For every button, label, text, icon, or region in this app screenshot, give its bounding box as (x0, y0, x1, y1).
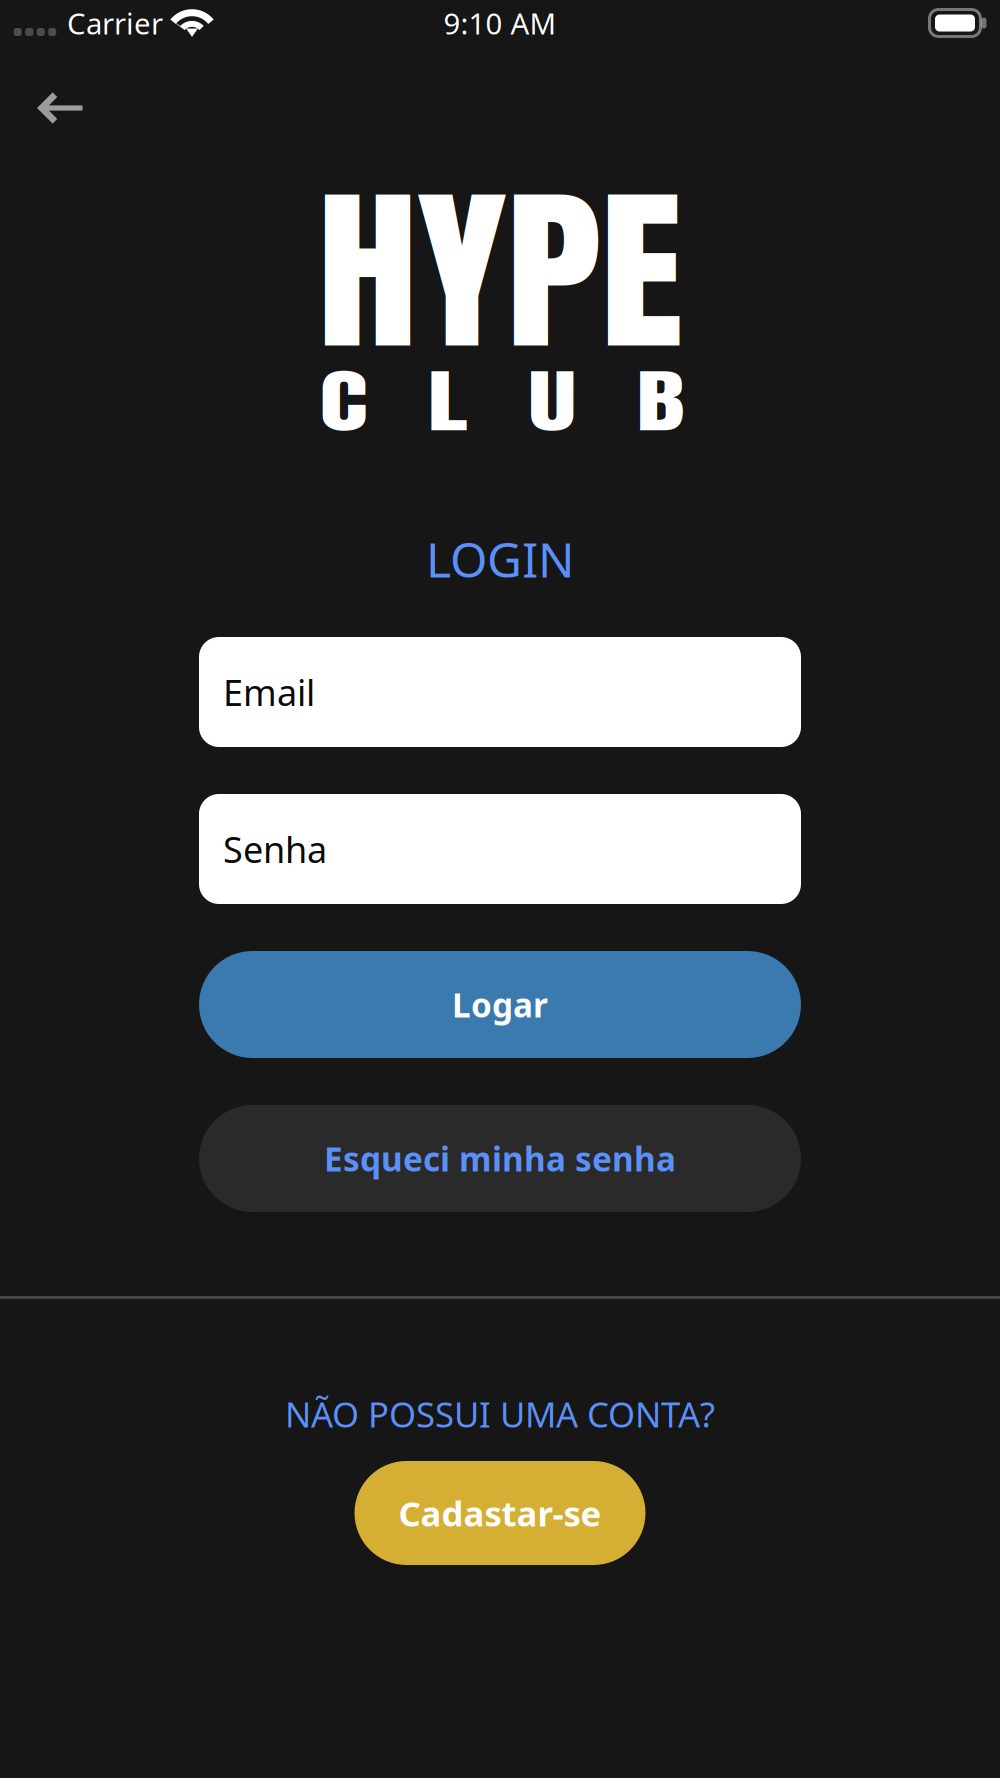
staticText: Logar (452, 982, 548, 1027)
button[interactable]: Esqueci minha senha (199, 1105, 801, 1212)
staticText: Esqueci minha senha (324, 1136, 676, 1181)
button[interactable]: Email (199, 637, 801, 747)
button[interactable]: Cadastar-se (354, 1461, 645, 1565)
button[interactable]: Senha (199, 794, 801, 904)
staticText: CLUB (377, 349, 627, 453)
staticText: HYPE (340, 138, 659, 403)
staticText: Cadastar-se (398, 1490, 601, 1536)
staticText: LOGIN (426, 527, 574, 591)
button[interactable]: Back (2, 60, 118, 156)
staticText: Carrier (67, 3, 163, 42)
button[interactable]: Logar (199, 951, 801, 1058)
staticText: 9:10 AM (443, 3, 556, 42)
staticText: Email (223, 668, 315, 716)
staticText: Senha (223, 825, 327, 873)
staticText: NÃO POSSUI UMA CONTA? (285, 1391, 715, 1437)
